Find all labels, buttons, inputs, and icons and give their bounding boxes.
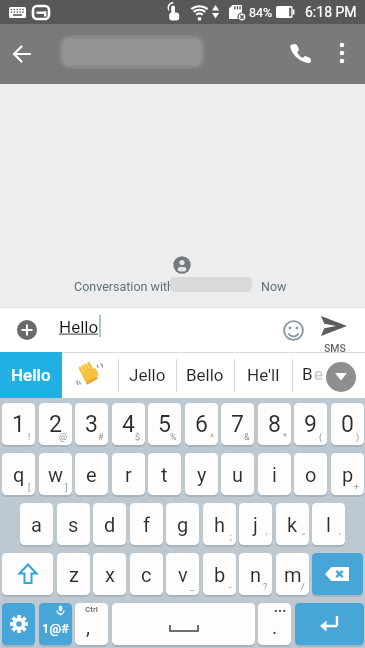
staticText: ] xyxy=(65,482,68,493)
button[interactable]: o xyxy=(294,453,327,495)
button[interactable]: e xyxy=(75,453,108,495)
button[interactable] xyxy=(328,33,358,75)
staticText: 5 xyxy=(158,411,171,438)
button[interactable]: b xyxy=(203,553,236,595)
button[interactable]: 9 xyxy=(294,403,327,445)
button[interactable] xyxy=(112,603,255,645)
button[interactable]: h xyxy=(203,503,236,545)
staticText: x xyxy=(105,563,115,586)
staticText: SMS xyxy=(324,342,346,354)
staticText: 0 xyxy=(341,411,354,438)
button[interactable]: p xyxy=(331,453,364,495)
button[interactable]: Hello xyxy=(50,312,260,347)
button[interactable]: 4 xyxy=(112,403,145,445)
button[interactable]: c xyxy=(130,553,163,595)
staticText: k xyxy=(287,513,298,536)
staticText: 7 xyxy=(231,411,244,438)
staticText: ! xyxy=(28,432,31,443)
staticText: , xyxy=(86,615,90,638)
staticText: b xyxy=(214,563,226,586)
button[interactable]: Ctrl xyxy=(75,603,108,645)
staticText: 6 xyxy=(195,411,208,438)
button[interactable]: 8 xyxy=(258,403,291,445)
button[interactable]: t xyxy=(148,453,181,495)
button[interactable]: 0 xyxy=(331,403,364,445)
button[interactable]: k xyxy=(276,503,309,545)
staticText: Ctrl xyxy=(85,605,98,614)
staticText: o xyxy=(305,463,317,486)
button[interactable]: a xyxy=(20,503,53,545)
button[interactable]: j xyxy=(239,503,272,545)
staticText: ) xyxy=(356,432,360,443)
staticText: ' xyxy=(266,532,268,543)
button[interactable]: l xyxy=(312,503,345,545)
staticText: - xyxy=(229,582,232,593)
button[interactable]: i xyxy=(258,453,291,495)
button[interactable] xyxy=(295,603,364,645)
button[interactable]: B xyxy=(292,352,365,398)
staticText: Conversation with xyxy=(74,279,174,294)
button[interactable]: r xyxy=(112,453,145,495)
staticText: 8 xyxy=(268,411,281,438)
staticText: q xyxy=(13,463,25,486)
staticText: " xyxy=(302,532,305,543)
staticText: Bello xyxy=(186,365,224,385)
button[interactable] xyxy=(280,33,320,75)
staticText: 9 xyxy=(304,411,317,438)
button[interactable]: v xyxy=(166,553,199,595)
button[interactable]: 1 xyxy=(2,403,35,445)
button[interactable]: d xyxy=(93,503,126,545)
button[interactable] xyxy=(2,553,53,595)
button[interactable]: 3 xyxy=(75,403,108,445)
button[interactable]: 5 xyxy=(148,403,181,445)
button[interactable]: 6 xyxy=(185,403,218,445)
button[interactable]: n xyxy=(239,553,272,595)
button[interactable] xyxy=(13,316,41,344)
button[interactable]: g xyxy=(166,503,199,545)
button[interactable] xyxy=(2,603,35,645)
staticText: He'll xyxy=(247,365,280,385)
staticText: p xyxy=(342,463,354,486)
staticText: @ xyxy=(59,432,68,443)
staticText: y xyxy=(197,463,207,486)
staticText: j xyxy=(253,513,258,536)
staticText: d xyxy=(104,513,116,536)
button[interactable]: 2 xyxy=(39,403,72,445)
button[interactable]: u xyxy=(221,453,254,495)
button[interactable]: z xyxy=(57,553,90,595)
button[interactable]: Hello xyxy=(0,352,62,398)
staticText: / xyxy=(301,582,305,593)
button[interactable]: Jello xyxy=(118,352,176,398)
button[interactable] xyxy=(312,553,363,595)
staticText: * xyxy=(283,432,287,443)
staticText: Hello xyxy=(59,317,99,337)
button[interactable]: ... xyxy=(258,603,291,645)
button[interactable]: He'll xyxy=(234,352,292,398)
staticText: % xyxy=(170,432,177,443)
button[interactable] xyxy=(6,32,48,76)
button[interactable] xyxy=(62,352,117,398)
staticText: _ xyxy=(190,582,195,593)
button[interactable]: q xyxy=(2,453,35,495)
button[interactable]: x xyxy=(93,553,126,595)
staticText: [ xyxy=(28,482,31,493)
button[interactable] xyxy=(279,316,307,344)
staticText: ... xyxy=(274,603,287,615)
button[interactable]: s xyxy=(57,503,90,545)
staticText: s xyxy=(68,513,79,536)
staticText: 4 xyxy=(122,411,135,438)
button[interactable]: f xyxy=(130,503,163,545)
button[interactable]: SMS xyxy=(313,312,357,352)
staticText: ; xyxy=(230,532,232,543)
button[interactable]: y xyxy=(185,453,218,495)
button[interactable]: 7 xyxy=(221,403,254,445)
button[interactable]: m xyxy=(276,553,309,595)
button[interactable]: 1@# xyxy=(39,603,72,645)
staticText: f xyxy=(143,513,150,536)
staticText: 6:18 PM xyxy=(305,4,357,20)
button[interactable]: w xyxy=(39,453,72,495)
button[interactable]: Bello xyxy=(176,352,234,398)
staticText: # xyxy=(98,432,104,443)
staticText: & xyxy=(244,432,250,443)
button[interactable] xyxy=(326,362,356,392)
